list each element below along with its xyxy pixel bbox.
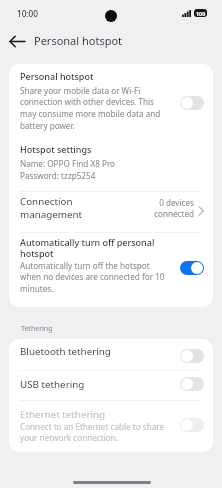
staticText: Connection management bbox=[20, 195, 83, 221]
button[interactable] bbox=[9, 401, 213, 452]
staticText: 0 devices connected bbox=[128, 197, 194, 220]
button[interactable]: Toggle bbox=[180, 261, 204, 275]
button[interactable]: Toggle bbox=[180, 96, 204, 110]
staticText: Personal hotspot bbox=[34, 33, 123, 48]
button[interactable] bbox=[9, 339, 213, 370]
staticText: 100 bbox=[196, 10, 206, 17]
button[interactable] bbox=[9, 140, 213, 191]
staticText: Ethernet tethering bbox=[20, 408, 106, 421]
staticText: Hotspot settings bbox=[20, 143, 92, 155]
staticText: 10:00 bbox=[17, 8, 38, 19]
button[interactable]: Back bbox=[6, 30, 29, 53]
staticText: Automatically turn off the hotspot when … bbox=[20, 260, 165, 295]
button[interactable] bbox=[9, 233, 213, 307]
button[interactable]: Toggle bbox=[180, 377, 204, 391]
staticText: Bluetooth tethering bbox=[20, 345, 111, 358]
button[interactable]: Toggle bbox=[180, 418, 204, 432]
staticText: USB tethering bbox=[20, 378, 85, 391]
staticText: Connect to an Ethernet cable to share yo… bbox=[20, 421, 165, 444]
button[interactable] bbox=[9, 371, 213, 400]
button[interactable]: Toggle bbox=[180, 349, 204, 363]
staticText: Tethering bbox=[21, 324, 53, 334]
staticText: Automatically turn off personal hotspot bbox=[20, 236, 165, 260]
button[interactable] bbox=[9, 64, 213, 140]
staticText: Password: tzzp5254 bbox=[20, 170, 96, 181]
staticText: Name: OPPO Find X8 Pro bbox=[20, 158, 116, 169]
staticText: Share your mobile data or Wi-Fi connecti… bbox=[20, 85, 165, 132]
button[interactable] bbox=[9, 192, 213, 232]
staticText: Personal hotspot bbox=[20, 70, 94, 82]
